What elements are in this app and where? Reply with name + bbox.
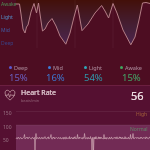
staticText: 150 bbox=[3, 110, 12, 117]
staticText: beats/min bbox=[21, 98, 40, 103]
staticText: Light bbox=[89, 64, 103, 71]
button[interactable]: Deep bbox=[0, 48, 37, 85]
staticText: 54% bbox=[84, 71, 103, 84]
staticText: 15% bbox=[9, 71, 28, 84]
staticText: 16% bbox=[46, 71, 65, 84]
staticText: 15% bbox=[122, 71, 141, 84]
staticText: High bbox=[136, 111, 148, 118]
staticText: Heart Rate bbox=[21, 88, 57, 98]
staticText: Awake bbox=[1, 1, 17, 8]
staticText: 100 bbox=[3, 124, 12, 131]
staticText: 50 bbox=[3, 137, 9, 144]
staticText: Mid bbox=[53, 64, 63, 71]
button[interactable]: Mid bbox=[37, 48, 74, 85]
button[interactable]: Awake bbox=[112, 48, 150, 85]
staticText: Mid bbox=[1, 27, 10, 34]
staticText: Deep bbox=[1, 40, 14, 47]
staticText: Deep bbox=[14, 64, 28, 71]
staticText: 56 bbox=[131, 88, 144, 103]
staticText: Normal bbox=[130, 126, 148, 133]
staticText: Awake bbox=[125, 64, 142, 71]
button[interactable]: Heart Rate bbox=[0, 86, 150, 104]
button[interactable]: Light bbox=[74, 48, 112, 85]
staticText: Light bbox=[1, 14, 13, 21]
